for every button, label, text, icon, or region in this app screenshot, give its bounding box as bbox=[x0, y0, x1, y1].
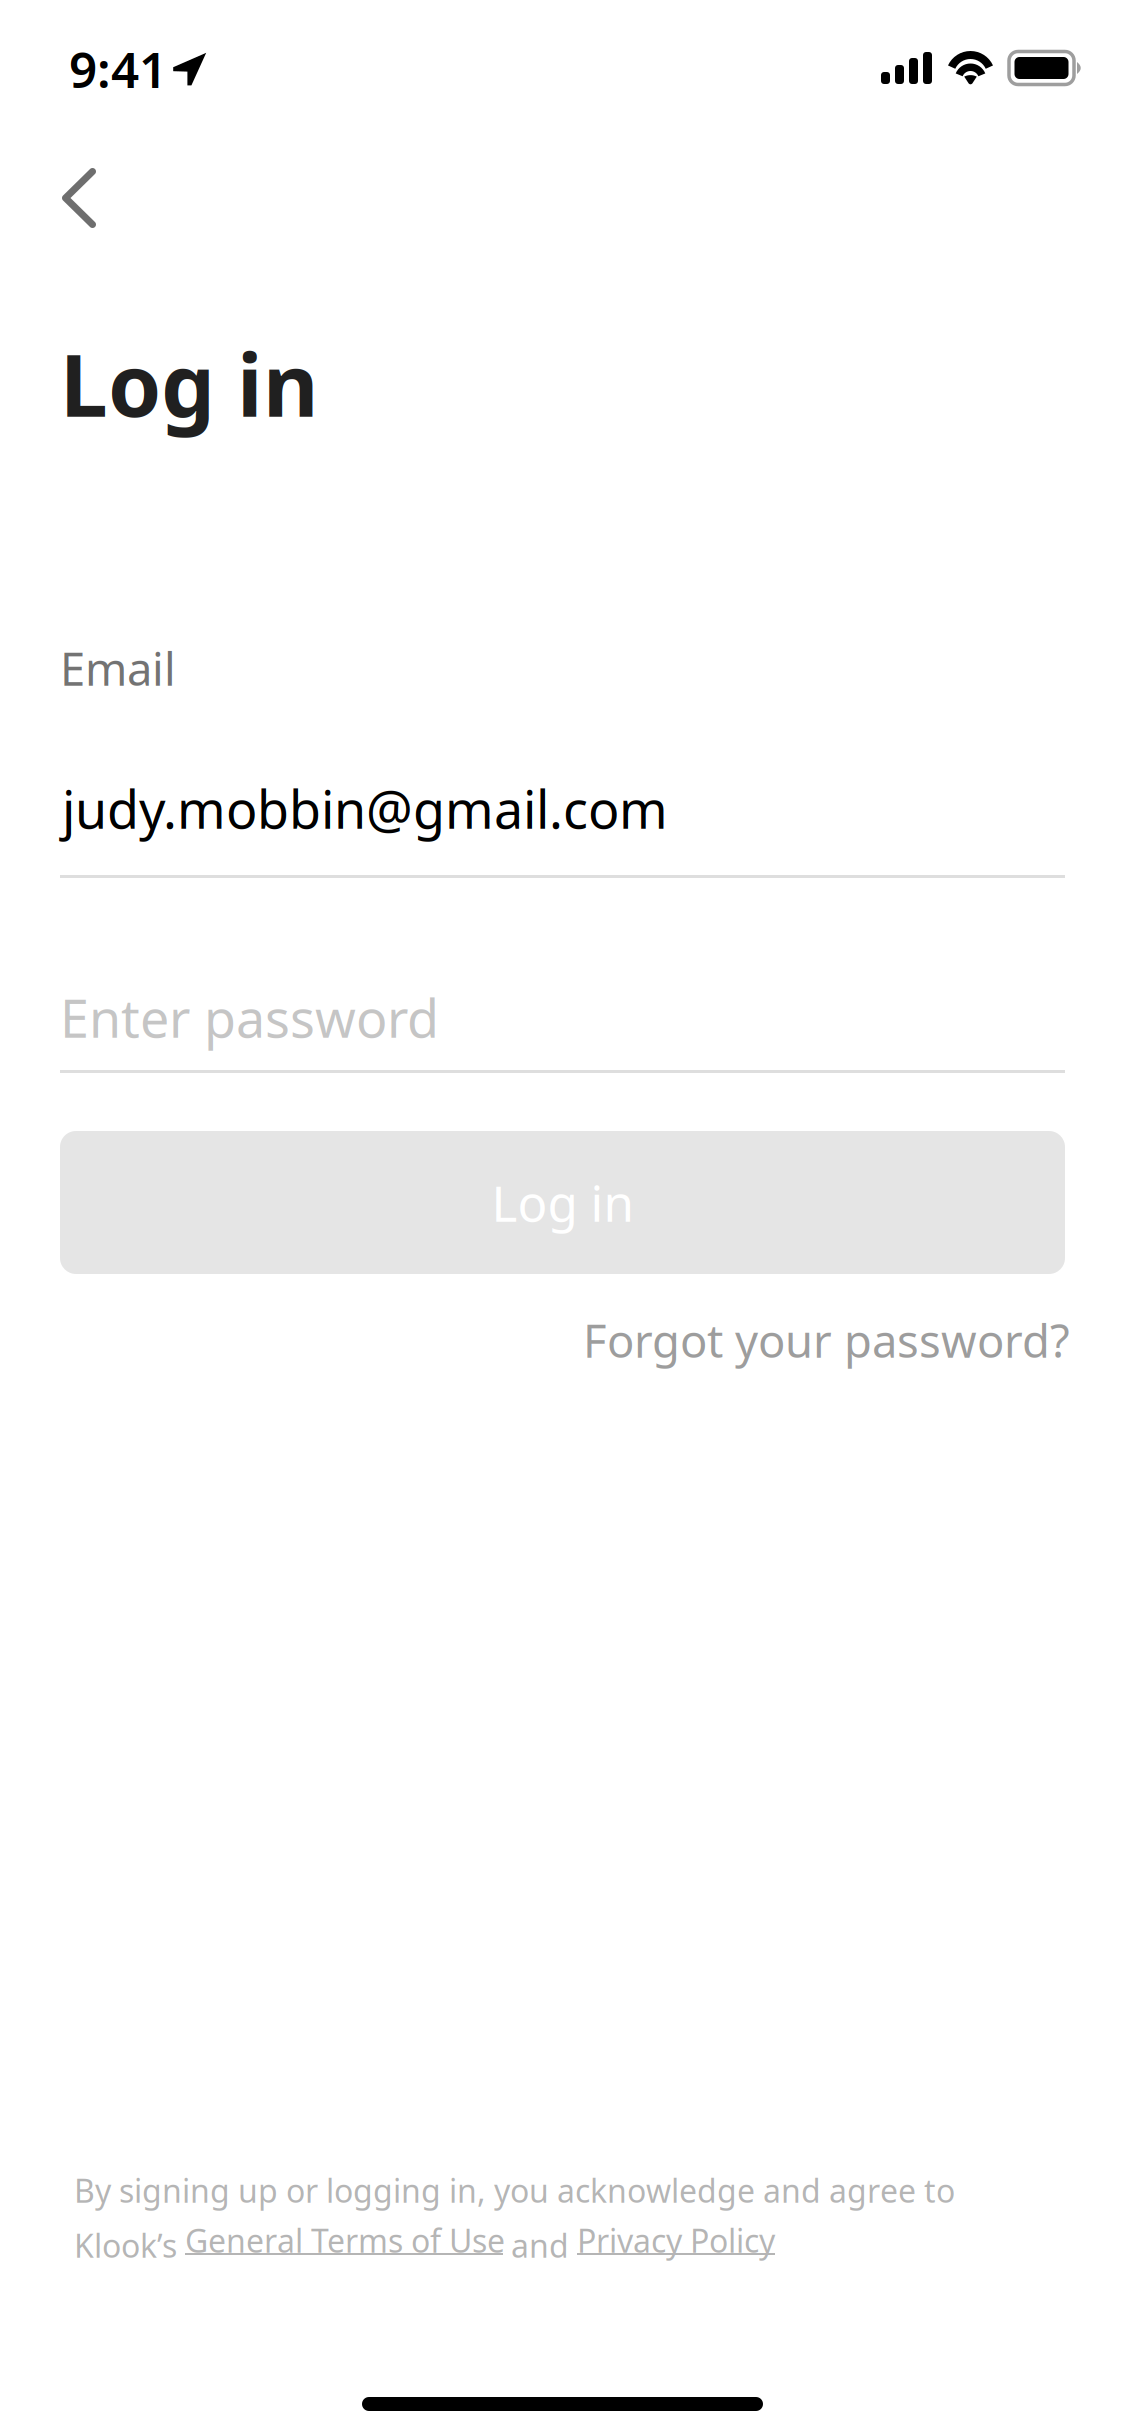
button[interactable]: Back bbox=[19, 138, 139, 258]
staticText: judy.mobbin@gmail.com bbox=[62, 774, 668, 843]
staticText: 9:41 bbox=[69, 36, 167, 101]
staticText: By signing up or logging in, you acknowl… bbox=[74, 2169, 955, 2211]
staticText: Enter password bbox=[60, 983, 439, 1052]
staticText: Forgot your password? bbox=[583, 1310, 1070, 1370]
staticText: Klook’s bbox=[74, 2224, 185, 2266]
staticText: Log in bbox=[60, 327, 318, 440]
button[interactable]: Privacy Policy bbox=[577, 2219, 775, 2263]
button[interactable]: judy.mobbin@gmail.com bbox=[60, 760, 1065, 878]
staticText: Log in bbox=[491, 1170, 633, 1235]
staticText: and bbox=[503, 2224, 577, 2266]
button[interactable]: Enter password bbox=[60, 969, 1065, 1073]
staticText: Privacy Policy bbox=[577, 2219, 775, 2261]
staticText: Email bbox=[60, 638, 176, 698]
button[interactable]: Forgot your password? bbox=[65, 1310, 1070, 1390]
staticText: General Terms of Use bbox=[185, 2219, 505, 2261]
button[interactable]: General Terms of Use bbox=[185, 2219, 503, 2263]
